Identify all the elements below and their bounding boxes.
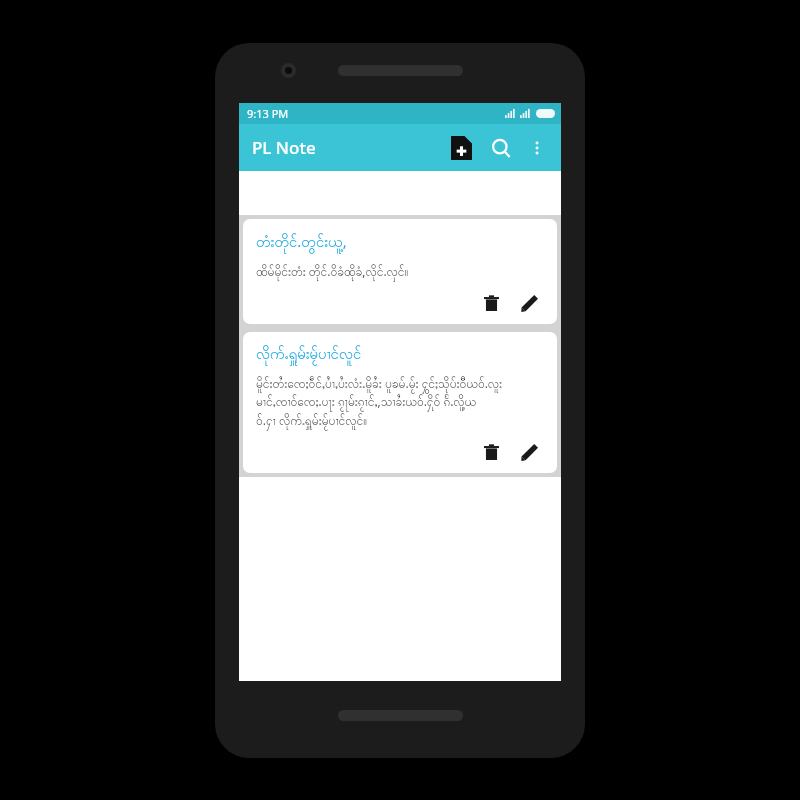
button[interactable]: Delete (476, 288, 506, 318)
staticText: လိုက်ႉရှူမ်းမႂ်ပၢင်လူင် (256, 344, 362, 366)
button[interactable]: တံးတိုင်.တွင်းယူ့, (243, 219, 557, 324)
button[interactable]: Edit (514, 288, 544, 318)
staticText: ထိမ်မိုင်းတံး တိုင်.ဝိခံထိုခံ,လိုင်.လှင်… (256, 263, 409, 282)
button[interactable]: လိုက်ႉရှူမ်းမႂ်ပၢင်လူင် (243, 332, 557, 473)
staticText: တံးတိုင်.တွင်းယူ့, (256, 231, 347, 254)
staticText: မိူင်းတႆးၸေႈဝဵင်ႇပၢႆႇပႆးလံးႉမိူခႆး ပူၶမ်… (256, 375, 503, 431)
staticText: 9:13 PM (247, 106, 289, 121)
button[interactable]: Delete (476, 437, 506, 467)
button[interactable]: Search (481, 128, 521, 168)
button[interactable]: More options (521, 132, 553, 164)
button[interactable]: Edit (514, 437, 544, 467)
button[interactable]: Add note (441, 128, 481, 168)
staticText: PL Note (252, 136, 316, 159)
